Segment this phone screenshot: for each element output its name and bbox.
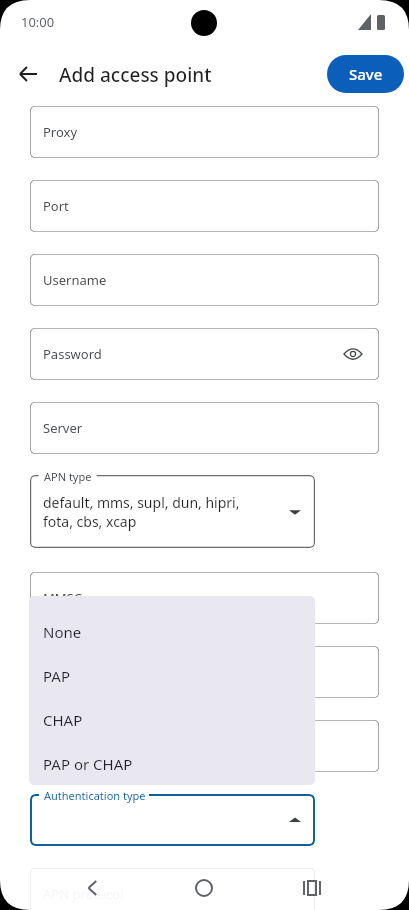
button[interactable]: CHAP bbox=[29, 698, 315, 742]
staticText: Server bbox=[43, 419, 83, 437]
staticText: Proxy bbox=[43, 123, 78, 141]
button[interactable]: Home bbox=[184, 868, 224, 908]
button[interactable]: Show password bbox=[341, 342, 365, 366]
button[interactable]: Username bbox=[30, 254, 379, 306]
staticText: MMSC bbox=[43, 589, 82, 607]
staticText: APN type bbox=[44, 469, 92, 484]
button[interactable]: Recent apps bbox=[292, 868, 332, 908]
button[interactable] bbox=[30, 794, 315, 846]
staticText: 10:00 bbox=[21, 13, 55, 31]
staticText: PAP or CHAP bbox=[43, 754, 133, 774]
button[interactable]: Port bbox=[30, 180, 379, 232]
button[interactable]: None bbox=[29, 610, 315, 654]
staticText: Save bbox=[349, 64, 383, 84]
staticText: None bbox=[43, 622, 82, 642]
staticText: Add access point bbox=[59, 62, 212, 88]
staticText: Password bbox=[43, 345, 102, 363]
button[interactable]: MMSC bbox=[30, 572, 379, 624]
button[interactable]: PAP bbox=[29, 654, 315, 698]
button[interactable]: APN protocol bbox=[30, 868, 315, 910]
button[interactable]: PAP or CHAP bbox=[29, 742, 315, 785]
button[interactable] bbox=[30, 720, 379, 772]
button[interactable]: Server bbox=[30, 402, 379, 454]
button[interactable]: Proxy bbox=[30, 106, 379, 158]
staticText: Username bbox=[43, 271, 107, 289]
button[interactable] bbox=[30, 646, 379, 698]
staticText: Authentication type bbox=[44, 788, 146, 803]
staticText: Port bbox=[43, 197, 69, 215]
staticText: PAP bbox=[43, 666, 70, 686]
button[interactable]: Password bbox=[30, 328, 379, 380]
button[interactable]: default, mms, supl, dun, hipri, fota, cb… bbox=[30, 475, 315, 548]
staticText: APN protocol bbox=[43, 885, 124, 903]
button[interactable]: Back bbox=[9, 54, 49, 94]
staticText: default, mms, supl, dun, hipri, fota, cb… bbox=[43, 493, 240, 531]
button[interactable]: Back bbox=[72, 868, 112, 908]
button[interactable]: Save bbox=[327, 55, 404, 93]
staticText: CHAP bbox=[43, 710, 83, 730]
